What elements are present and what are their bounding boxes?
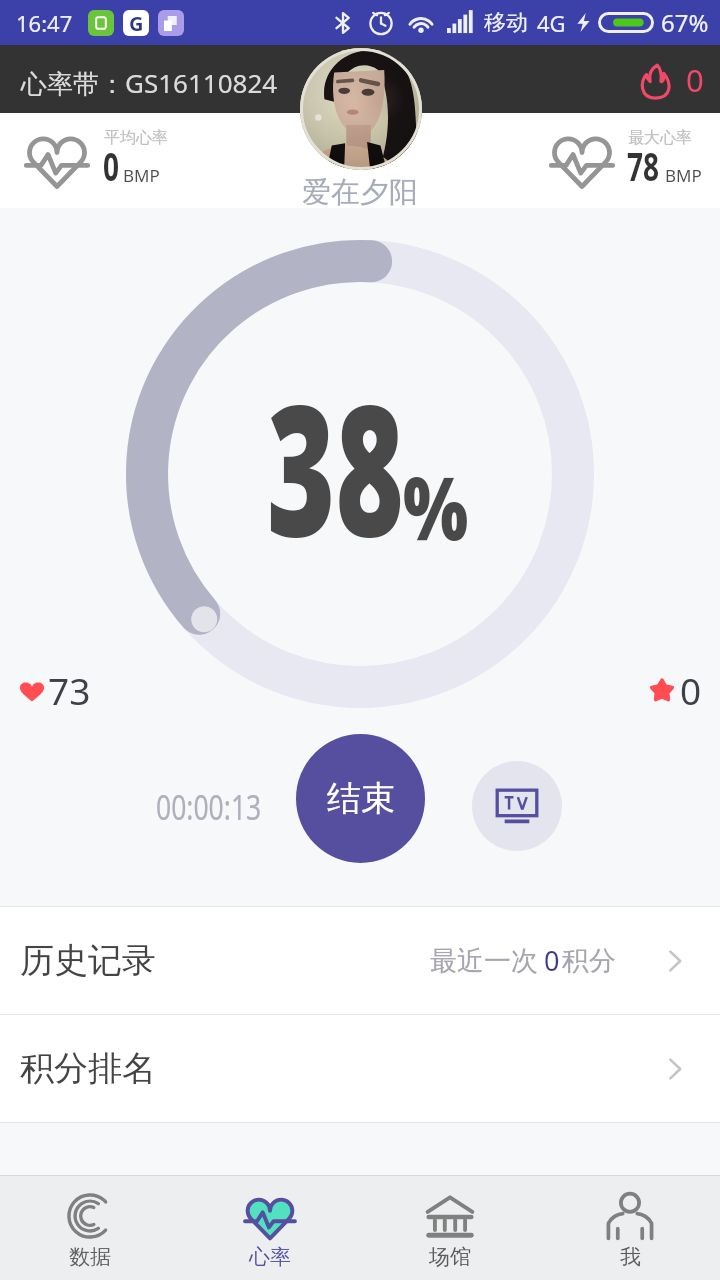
staticText: 场馆: [429, 1244, 471, 1270]
staticText: 67%: [661, 6, 709, 39]
staticText: 00:00:13: [156, 784, 261, 830]
staticText: 73: [48, 665, 91, 715]
button[interactable]: Calories: [638, 60, 704, 102]
staticText: 16:47: [16, 8, 73, 38]
staticText: 0: [686, 59, 704, 101]
staticText: G: [129, 10, 144, 36]
staticText: 78: [627, 138, 659, 192]
staticText: 历史记录: [20, 939, 156, 982]
staticText: 0: [680, 665, 702, 715]
button[interactable]: 我: [540, 1176, 720, 1280]
staticText: 心率带：GS16110824: [21, 65, 278, 101]
staticText: 积分排名: [20, 1047, 156, 1090]
staticText: 0: [103, 138, 119, 192]
staticText: 最近一次: [430, 944, 538, 978]
button[interactable]: 结束: [296, 734, 425, 863]
staticText: 4G: [537, 8, 566, 38]
button[interactable]: 积分排名: [0, 1015, 720, 1122]
button[interactable]: 历史记录: [0, 907, 720, 1014]
button[interactable]: Cast to TV: [472, 761, 562, 851]
staticText: BMP: [665, 164, 702, 187]
staticText: 0: [544, 942, 560, 979]
staticText: 爱在夕阳: [302, 174, 418, 211]
button[interactable]: 心率: [180, 1176, 360, 1280]
button[interactable]: 场馆: [360, 1176, 540, 1280]
staticText: 移动: [484, 9, 528, 37]
button[interactable]: 0: [647, 665, 702, 715]
staticText: 最大心率: [628, 128, 692, 148]
staticText: 38: [267, 343, 404, 590]
staticText: 结束: [327, 777, 395, 820]
staticText: %: [403, 448, 469, 565]
staticText: BMP: [123, 164, 160, 187]
staticText: 心率: [249, 1244, 291, 1270]
button[interactable]: Profile photo: [300, 48, 422, 170]
button[interactable]: 数据: [0, 1176, 180, 1280]
staticText: 数据: [69, 1244, 111, 1270]
staticText: 平均心率: [104, 128, 168, 148]
staticText: 我: [620, 1244, 641, 1270]
button[interactable]: 73: [18, 665, 91, 715]
staticText: 积分: [562, 944, 616, 978]
